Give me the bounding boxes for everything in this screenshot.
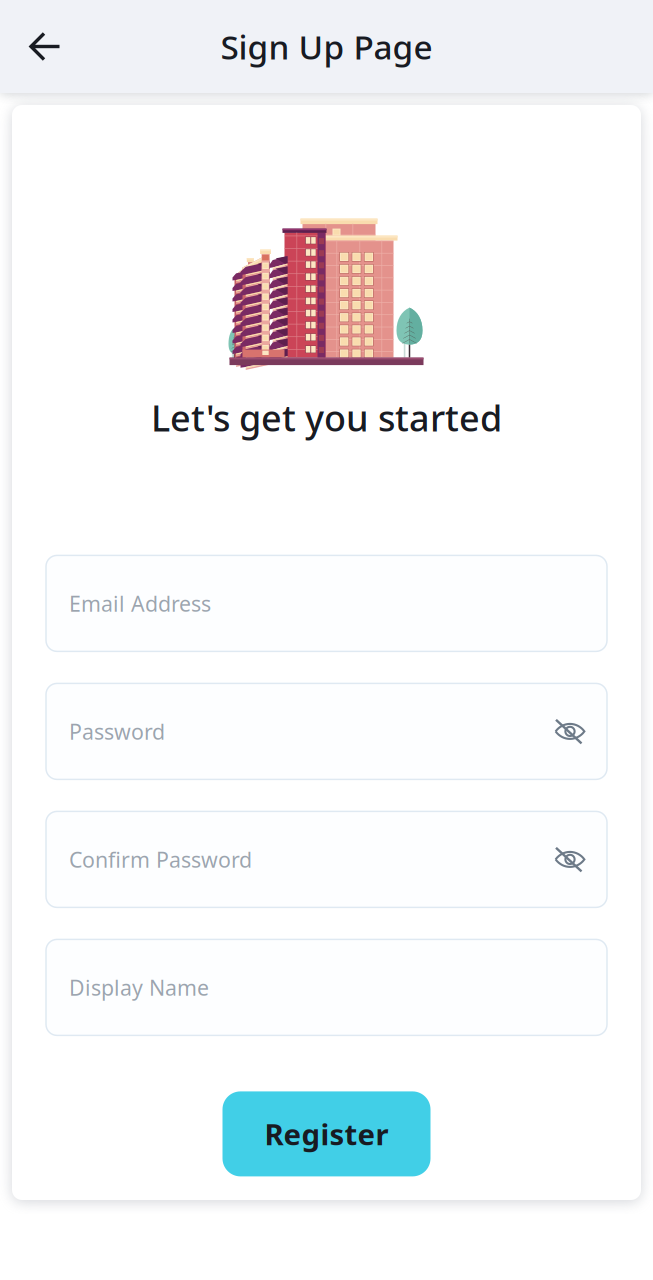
staticText: Sign Up Page: [220, 24, 432, 69]
button[interactable]: Register: [222, 1091, 430, 1176]
button[interactable]: Back: [0, 0, 73, 92]
button[interactable]: Confirm Password: [46, 811, 607, 907]
button[interactable]: Display Name: [46, 939, 607, 1035]
staticText: Email Address: [69, 589, 211, 617]
staticText: Confirm Password: [69, 845, 252, 873]
staticText: Display Name: [69, 973, 209, 1001]
staticText: Password: [69, 717, 165, 745]
staticText: Register: [264, 1114, 388, 1153]
button[interactable]: Password: [46, 683, 607, 779]
button[interactable]: Email Address: [46, 555, 607, 651]
staticText: Let's get you started: [151, 394, 502, 441]
